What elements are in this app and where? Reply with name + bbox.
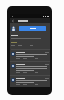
button[interactable] [10, 62, 50, 76]
button[interactable] [10, 76, 50, 87]
button[interactable] [10, 50, 50, 62]
button[interactable] [19, 26, 46, 31]
button[interactable]: Navigate up [10, 18, 15, 23]
